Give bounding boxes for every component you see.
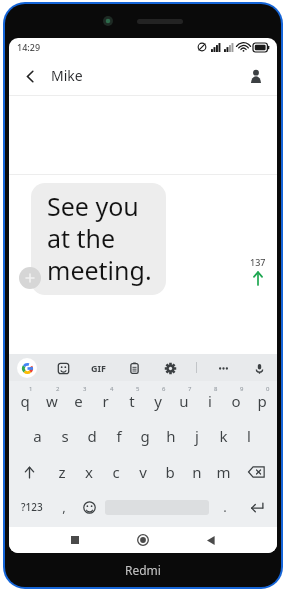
button[interactable]: b: [156, 456, 183, 488]
staticText: i: [208, 391, 212, 411]
button[interactable]: d: [78, 420, 105, 452]
staticText: z: [58, 462, 66, 482]
staticText: o: [231, 391, 241, 411]
staticText: ,: [62, 498, 66, 516]
staticText: h: [166, 426, 176, 446]
button[interactable]: 4: [92, 384, 119, 416]
button[interactable]: a: [24, 420, 51, 452]
staticText: v: [139, 462, 147, 482]
button[interactable]: l: [236, 420, 262, 452]
button[interactable]: See you at the meeting.: [31, 183, 166, 295]
staticText: 4: [110, 385, 114, 393]
staticText: .: [223, 498, 227, 516]
staticText: See you at the meeting.: [47, 189, 152, 287]
button[interactable]: .: [212, 492, 238, 522]
staticText: f: [116, 426, 122, 446]
button[interactable]: 0: [249, 384, 275, 416]
button[interactable]: Google search: [17, 358, 37, 378]
button[interactable]: s: [51, 420, 78, 452]
staticText: 1: [29, 385, 33, 393]
button[interactable]: f: [105, 420, 132, 452]
button[interactable]: 8: [197, 384, 223, 416]
button[interactable]: k: [210, 420, 236, 452]
staticText: a: [33, 426, 42, 446]
staticText: 5: [136, 385, 140, 393]
button[interactable]: j: [184, 420, 210, 452]
staticText: 3: [83, 385, 87, 393]
staticText: GIF: [91, 362, 106, 374]
button[interactable]: ,: [52, 492, 76, 522]
staticText: e: [74, 391, 83, 411]
staticText: 7: [188, 385, 192, 393]
button[interactable]: Send message: [247, 256, 269, 285]
button[interactable]: v: [129, 456, 156, 488]
button[interactable]: 9: [223, 384, 249, 416]
button[interactable]: Back: [15, 61, 45, 91]
staticText: c: [112, 462, 120, 482]
button[interactable]: z: [48, 456, 75, 488]
staticText: Mike: [51, 66, 83, 85]
button[interactable]: 6: [145, 384, 171, 416]
staticText: 9: [240, 385, 244, 393]
button[interactable]: 5: [119, 384, 145, 416]
button[interactable]: n: [183, 456, 210, 488]
button[interactable]: Shift: [11, 456, 48, 488]
button[interactable]: Stickers: [53, 358, 73, 378]
staticText: n: [192, 462, 202, 482]
staticText: 0: [266, 385, 270, 393]
button[interactable]: Settings: [160, 358, 180, 378]
button[interactable]: c: [102, 456, 129, 488]
staticText: j: [195, 426, 199, 446]
button[interactable]: GIF: [89, 360, 108, 376]
staticText: w: [46, 391, 58, 411]
staticText: u: [179, 391, 189, 411]
staticText: 8: [214, 385, 218, 393]
staticText: y: [154, 391, 162, 411]
button[interactable]: 3: [65, 384, 92, 416]
staticText: g: [140, 426, 150, 446]
button[interactable]: Add attachment: [19, 267, 41, 289]
button[interactable]: 7: [171, 384, 197, 416]
button[interactable]: Back: [194, 527, 228, 553]
staticText: q: [20, 391, 30, 411]
staticText: m: [216, 462, 231, 482]
button[interactable]: Backspace: [237, 456, 275, 488]
button[interactable]: x: [75, 456, 102, 488]
button[interactable]: g: [132, 420, 158, 452]
button[interactable]: h: [158, 420, 184, 452]
button[interactable]: Clipboard: [124, 358, 144, 378]
staticText: p: [257, 391, 267, 411]
button[interactable]: More options: [213, 358, 233, 378]
button[interactable]: Contact profile: [241, 61, 271, 91]
button[interactable]: Enter: [238, 492, 275, 522]
button[interactable]: 1: [11, 384, 38, 416]
staticText: Redmi: [125, 562, 161, 578]
button[interactable]: Voice input: [249, 358, 269, 378]
button[interactable]: Emoji: [76, 492, 102, 522]
button[interactable]: 2: [38, 384, 65, 416]
button[interactable]: m: [210, 456, 237, 488]
button[interactable]: ?123: [11, 492, 52, 522]
button[interactable]: Recent apps: [58, 527, 92, 553]
staticText: b: [165, 462, 175, 482]
staticText: l: [247, 426, 251, 446]
staticText: 137: [250, 256, 266, 268]
staticText: 2: [56, 385, 60, 393]
staticText: 14:29: [17, 41, 41, 53]
staticText: x: [85, 462, 93, 482]
staticText: r: [102, 391, 109, 411]
staticText: t: [129, 391, 135, 411]
staticText: s: [61, 426, 69, 446]
button[interactable]: Home: [126, 527, 160, 553]
staticText: ?123: [21, 500, 43, 514]
staticText: 6: [162, 385, 166, 393]
staticText: d: [87, 426, 97, 446]
staticText: k: [219, 426, 228, 446]
